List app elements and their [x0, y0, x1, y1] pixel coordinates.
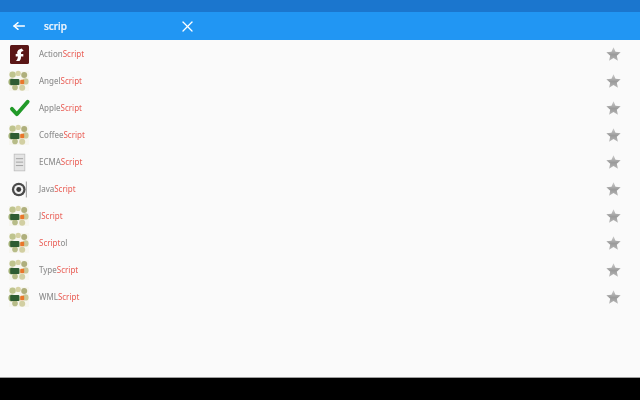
button[interactable]: WMLScript: [0, 283, 640, 310]
staticText: AppleScript: [39, 102, 82, 113]
button[interactable]: Back: [8, 15, 30, 37]
button[interactable]: JavaScript: [0, 175, 640, 202]
staticText: JScript: [39, 210, 63, 221]
staticText: CoffeeScript: [39, 129, 85, 140]
staticText: scrip: [44, 19, 67, 33]
button[interactable]: Favorite: [601, 231, 625, 255]
button[interactable]: Favorite: [601, 69, 625, 93]
button[interactable]: Favorite: [601, 123, 625, 147]
staticText: JavaScript: [39, 183, 76, 194]
staticText: ECMAScript: [39, 156, 83, 167]
staticText: TypeScript: [39, 264, 79, 275]
button[interactable]: ECMAScript: [0, 148, 640, 175]
button[interactable]: JScript: [0, 202, 640, 229]
button[interactable]: scrip: [44, 19, 67, 33]
button[interactable]: Favorite: [601, 177, 625, 201]
button[interactable]: CoffeeScript: [0, 121, 640, 148]
button[interactable]: Scriptol: [0, 229, 640, 256]
button[interactable]: AngelScript: [0, 67, 640, 94]
button[interactable]: Favorite: [601, 96, 625, 120]
button[interactable]: Favorite: [601, 285, 625, 309]
button[interactable]: ActionScript: [0, 40, 640, 67]
staticText: ActionScript: [39, 48, 85, 59]
button[interactable]: AppleScript: [0, 94, 640, 121]
staticText: WMLScript: [39, 291, 80, 302]
button[interactable]: Favorite: [601, 258, 625, 282]
button[interactable]: Favorite: [601, 42, 625, 66]
button[interactable]: Clear search: [176, 15, 198, 37]
button[interactable]: Favorite: [601, 150, 625, 174]
button[interactable]: TypeScript: [0, 256, 640, 283]
staticText: AngelScript: [39, 75, 82, 86]
staticText: Scriptol: [39, 237, 68, 248]
button[interactable]: Favorite: [601, 204, 625, 228]
